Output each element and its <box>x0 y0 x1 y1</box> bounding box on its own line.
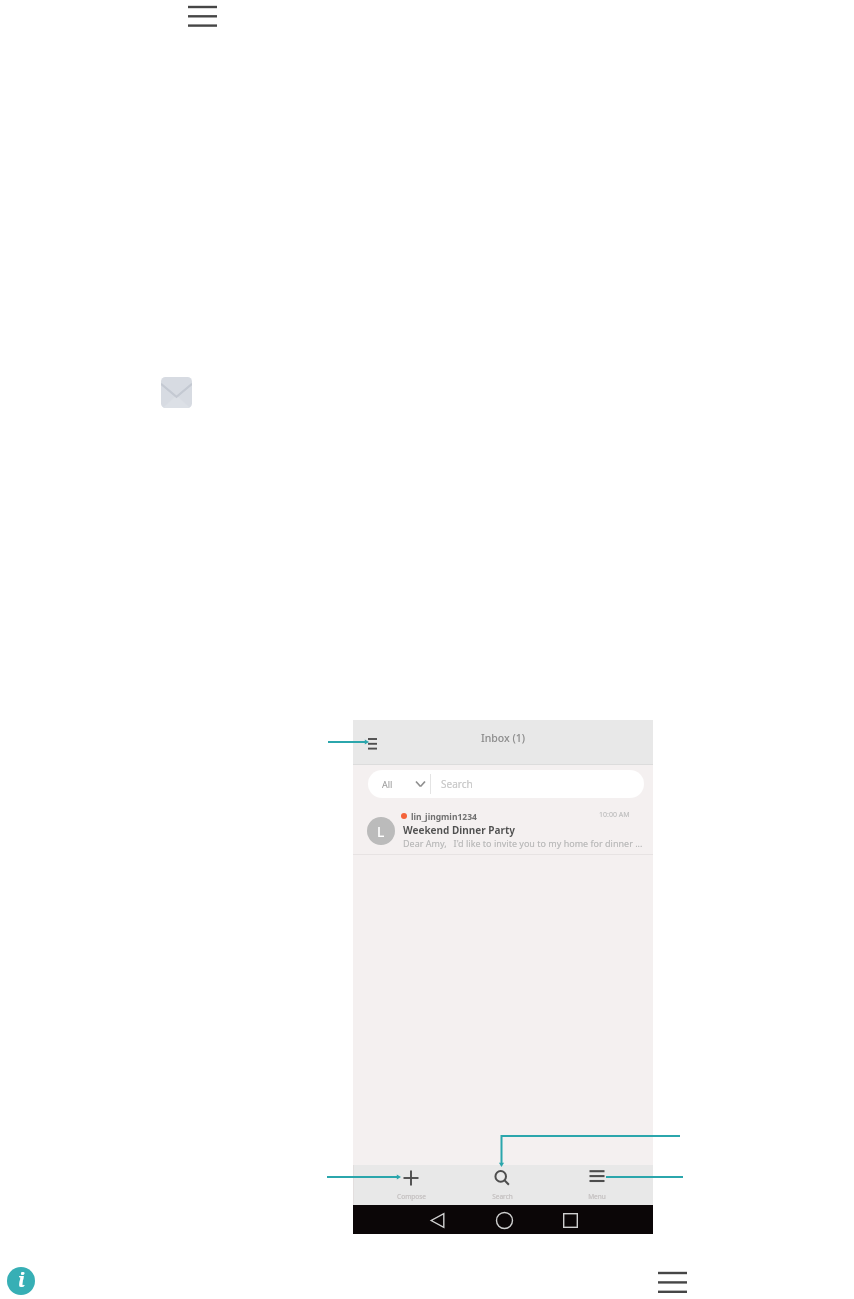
button[interactable]: Search <box>472 1165 532 1205</box>
button[interactable]: Menu <box>567 1165 627 1205</box>
button[interactable]: Search <box>431 770 644 798</box>
button[interactable]: Information <box>7 1267 35 1295</box>
button[interactable]: Menu <box>658 1270 688 1295</box>
staticText: Menu <box>588 1192 606 1201</box>
staticText: Search <box>441 777 473 791</box>
staticText: i <box>18 1267 25 1293</box>
staticText: 10:00 AM <box>599 810 630 820</box>
button[interactable]: All <box>368 770 430 798</box>
button[interactable]: Compose <box>381 1165 441 1205</box>
staticText: All <box>382 778 393 790</box>
button[interactable]: Recent apps <box>563 1213 578 1228</box>
staticText: Search <box>492 1192 513 1201</box>
button[interactable]: L <box>353 803 653 854</box>
button[interactable]: Menu <box>188 4 218 29</box>
staticText: Inbox (1) <box>481 731 526 745</box>
button[interactable]: Navigation drawer <box>368 738 377 750</box>
staticText: lin_jingmin1234 <box>411 811 477 823</box>
other: Email <box>161 377 192 408</box>
button[interactable]: Back <box>430 1213 445 1228</box>
button[interactable]: Home <box>496 1212 513 1229</box>
staticText: Weekend Dinner Party <box>403 823 516 837</box>
staticText: Compose <box>397 1192 426 1201</box>
staticText: L <box>377 822 385 841</box>
staticText: Dear Amy, I'd like to invite you to my h… <box>403 837 643 849</box>
